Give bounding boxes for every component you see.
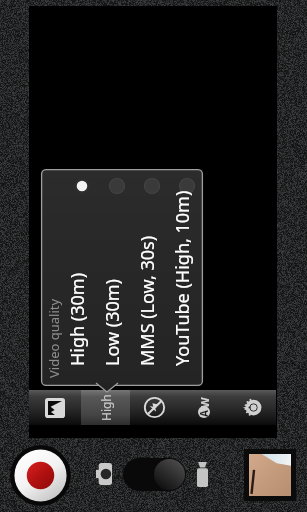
staticText: A	[190, 403, 204, 410]
button[interactable]: Gallery	[249, 454, 291, 496]
button[interactable]: Exposure	[29, 390, 81, 425]
staticText: Low (30m)	[12, 190, 37, 278]
button[interactable]: YouTube (High, 10m)	[169, 169, 204, 385]
button[interactable]: Camera mode	[96, 463, 112, 485]
button[interactable]: MMS (Low, 30s)	[134, 169, 169, 385]
staticText: YouTube (High, 10m)	[0, 14, 19, 190]
button[interactable]: Video mode	[197, 462, 208, 487]
button[interactable]: Flash off	[130, 390, 179, 425]
button[interactable]: High	[81, 390, 130, 425]
staticText: High	[71, 367, 87, 394]
staticText: MMS (Low, 30s)	[4, 104, 29, 235]
staticText: W	[186, 386, 201, 397]
button[interactable]: Low (30m)	[99, 169, 134, 385]
button[interactable]: Record	[10, 445, 71, 506]
button[interactable]: Settings	[228, 390, 276, 425]
button[interactable]: High (30m)	[64, 169, 99, 385]
button[interactable]: Switch to camera	[123, 458, 186, 491]
button[interactable]: White balance	[179, 390, 228, 425]
